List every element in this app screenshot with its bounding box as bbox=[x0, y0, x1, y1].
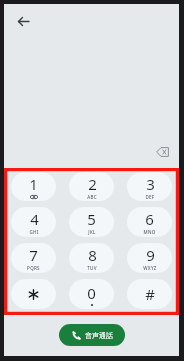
staticText: 1 bbox=[29, 174, 38, 194]
staticText: 7 bbox=[29, 245, 38, 265]
staticText: ABC bbox=[87, 194, 97, 200]
button[interactable]: 8 bbox=[69, 243, 114, 273]
button[interactable]: 0 bbox=[69, 279, 114, 309]
staticText: 6 bbox=[145, 209, 154, 229]
staticText: 9 bbox=[146, 245, 155, 265]
button[interactable]: 6 bbox=[127, 207, 172, 237]
button[interactable]: 1 bbox=[11, 172, 56, 201]
button[interactable] bbox=[11, 279, 56, 309]
staticText: 3 bbox=[146, 174, 155, 194]
staticText: 2 bbox=[88, 174, 97, 194]
button[interactable]: Backspace bbox=[151, 141, 173, 163]
button[interactable]: 2 bbox=[69, 172, 114, 201]
staticText: TUV bbox=[87, 265, 97, 271]
button[interactable]: 5 bbox=[69, 207, 114, 237]
staticText: GHI bbox=[29, 229, 39, 235]
staticText: 8 bbox=[88, 245, 97, 265]
staticText: 音声通話 bbox=[85, 331, 113, 340]
button[interactable]: 9 bbox=[127, 243, 172, 273]
staticText: JKL bbox=[88, 229, 96, 235]
staticText: # bbox=[145, 284, 155, 304]
button[interactable]: 7 bbox=[11, 243, 56, 273]
staticText: PQRS bbox=[27, 265, 40, 271]
button[interactable]: 4 bbox=[11, 207, 56, 237]
button[interactable]: # bbox=[127, 279, 172, 309]
staticText: 5 bbox=[87, 209, 96, 229]
staticText: 4 bbox=[30, 209, 39, 229]
button[interactable]: Back bbox=[11, 9, 35, 33]
staticText: MNO bbox=[143, 229, 156, 235]
staticText: DEF bbox=[145, 194, 155, 200]
button[interactable]: 3 bbox=[127, 172, 172, 201]
staticText: 0 bbox=[87, 283, 96, 303]
staticText: WXYZ bbox=[143, 265, 157, 271]
button[interactable]: 音声通話 bbox=[59, 324, 125, 346]
